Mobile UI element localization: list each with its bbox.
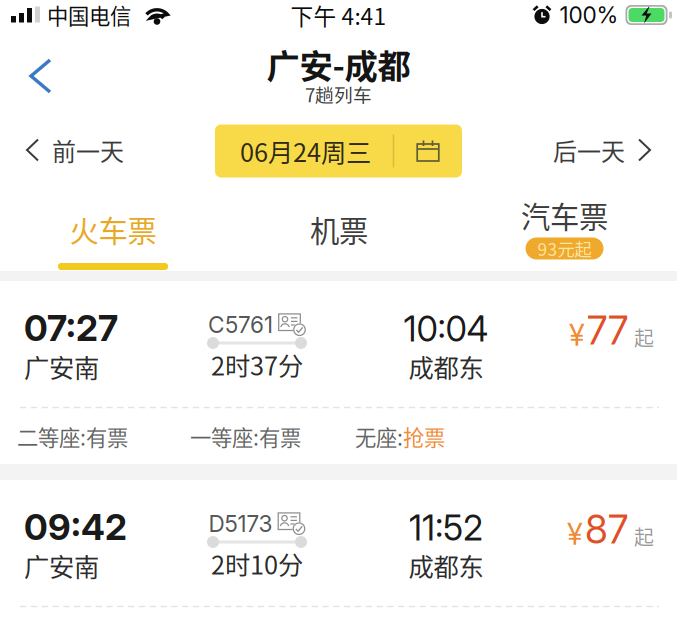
- staticText: 中国电信: [47, 0, 131, 30]
- button[interactable]: 机票: [226, 179, 452, 271]
- staticText: 2时37分: [211, 346, 303, 383]
- staticText: 前一天: [52, 133, 124, 167]
- staticText: 09:42: [24, 505, 127, 549]
- staticText: 起: [634, 522, 654, 551]
- staticText: 成都东: [408, 547, 483, 584]
- staticText: 87: [585, 506, 628, 553]
- staticText: 火车票: [69, 208, 156, 250]
- button[interactable]: 06月24周三: [215, 116, 462, 177]
- staticText: 起: [634, 323, 654, 352]
- staticText: 07:27: [24, 306, 118, 350]
- staticText: D5173: [208, 510, 272, 537]
- button[interactable]: 前一天: [0, 113, 140, 181]
- staticText: 93元起: [537, 236, 591, 261]
- button[interactable]: 后一天: [537, 113, 677, 181]
- staticText: 无座:: [355, 421, 403, 452]
- staticText: 77: [587, 307, 628, 354]
- staticText: 一等座:有票: [190, 421, 301, 452]
- staticText: 下午 4:41: [290, 0, 386, 31]
- staticText: 10:04: [403, 308, 488, 350]
- staticText: 广安南: [24, 348, 99, 385]
- staticText: 成都东: [408, 348, 483, 385]
- button[interactable]: 火车票: [0, 179, 226, 271]
- button[interactable]: 返回: [0, 46, 75, 120]
- staticText: 汽车票: [521, 194, 608, 236]
- staticText: 抢票: [403, 421, 445, 452]
- staticText: 7趟列车: [305, 80, 372, 107]
- staticText: 后一天: [553, 133, 625, 167]
- staticText: C5761: [208, 311, 273, 338]
- staticText: ¥: [567, 516, 583, 552]
- staticText: 100%: [559, 1, 618, 29]
- staticText: 广安南: [24, 547, 99, 584]
- button[interactable]: 汽车票: [452, 179, 677, 271]
- staticText: 2时10分: [211, 545, 303, 582]
- staticText: ¥: [569, 317, 585, 353]
- staticText: 二等座:有票: [17, 421, 128, 452]
- staticText: 机票: [310, 208, 368, 250]
- staticText: 11:52: [409, 507, 483, 549]
- staticText: 广安-成都: [266, 40, 410, 88]
- staticText: 06月24周三: [240, 133, 371, 169]
